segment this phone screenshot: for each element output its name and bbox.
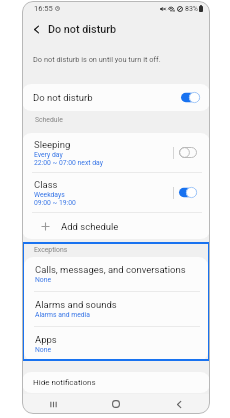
staticText: Add schedule xyxy=(61,221,119,232)
staticText: None xyxy=(35,276,52,284)
button[interactable]: Back xyxy=(147,394,210,414)
staticText: Class xyxy=(34,179,58,190)
staticText: Weekdays xyxy=(34,191,65,199)
button[interactable]: Sleeping xyxy=(22,133,210,172)
staticText: Do not disturb xyxy=(33,92,93,103)
staticText: Hide notifications xyxy=(33,378,96,387)
button[interactable]: Back xyxy=(28,21,45,38)
staticText: None xyxy=(35,346,52,354)
button[interactable]: Apps xyxy=(24,327,208,361)
staticText: Alarms and sounds xyxy=(35,299,117,310)
staticText: Do not disturb is on until you turn it o… xyxy=(33,55,161,64)
button[interactable]: Calls, messages, and conversations xyxy=(24,257,208,291)
button[interactable]: Do not disturb xyxy=(22,84,210,111)
staticText: Every day xyxy=(34,151,63,159)
staticText: 16:55 xyxy=(34,4,53,13)
button[interactable]: Add schedule xyxy=(22,213,210,239)
button[interactable]: Class xyxy=(22,173,210,212)
staticText: Do not disturb xyxy=(48,23,117,36)
button[interactable]: Hide notifications xyxy=(22,372,210,393)
staticText: Calls, messages, and conversations xyxy=(35,264,186,275)
staticText: Sleeping xyxy=(34,139,71,150)
staticText: 09:00 ~ 19:00 xyxy=(34,199,76,207)
staticText: 83% xyxy=(185,5,198,13)
staticText: 22:00 ~ 07:00 next day xyxy=(34,159,103,167)
staticText: Apps xyxy=(35,334,57,345)
button[interactable]: Recents xyxy=(22,394,84,414)
staticText: Alarms and media xyxy=(35,311,90,319)
button[interactable]: Home xyxy=(84,394,147,414)
button[interactable]: Alarms and sounds xyxy=(24,292,208,326)
staticText: Exceptions xyxy=(34,246,68,254)
staticText: Schedule xyxy=(35,116,63,124)
